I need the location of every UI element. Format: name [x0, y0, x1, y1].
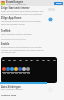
button[interactable]: Traffich — [1, 29, 44, 36]
staticText: Enable edge-to-edge rendering so that ap… — [1, 46, 44, 53]
staticText: Enable — [1, 42, 10, 45]
staticText: Zeige die Startseite wenn dieser Browser… — [1, 10, 44, 17]
button[interactable]: App — [22, 67, 26, 74]
button[interactable]: App — [10, 67, 14, 74]
button[interactable]: App — [18, 67, 22, 74]
button[interactable]: Zeige App-Home — [1, 16, 44, 25]
staticText: Mehr aktueller Verkehr anzeigen — [1, 33, 32, 36]
button[interactable]: App — [14, 67, 18, 74]
button[interactable]: App — [26, 67, 30, 74]
staticText: App-Home Bildschirm beim Start anzeigen … — [1, 20, 44, 25]
button[interactable]: Tool 2 — [13, 59, 16, 62]
staticText: Einstellungen — [6, 0, 24, 3]
button[interactable]: Tool 1 — [8, 59, 11, 62]
button[interactable]: Zeige Startseite immer — [1, 6, 44, 17]
button[interactable]: Tool 0 — [2, 59, 5, 62]
button[interactable]: Tool 8 — [47, 59, 50, 62]
button[interactable]: Tool 5 — [30, 59, 33, 62]
staticText: Sort Anzeigen Spielend — [1, 88, 23, 91]
staticText: Zeige alle Optionen an — [6, 3, 27, 6]
staticText: Zeige Startseite immer — [1, 6, 30, 9]
button[interactable]: Enable — [1, 42, 44, 53]
button[interactable]: Tool 9 — [53, 59, 56, 62]
staticText: Zeige App-Home — [1, 16, 22, 19]
button[interactable]: App — [2, 67, 6, 74]
button[interactable]: App — [6, 67, 10, 74]
button[interactable]: App icon — [1, 1, 5, 5]
button[interactable]: Tool 6 — [36, 59, 39, 62]
staticText: ERWEITERTE EINSTELLUNGEN — [1, 38, 27, 40]
staticText: Auto-Vindergan — [1, 85, 21, 88]
staticText: Aktuelle Seite — [1, 94, 17, 97]
button[interactable]: Install — [54, 2, 63, 5]
button[interactable]: Tool 3 — [19, 59, 22, 62]
button[interactable]: Tool 7 — [42, 59, 45, 62]
button[interactable]: Toggle — [48, 17, 53, 22]
staticText: Install — [56, 2, 62, 5]
staticText: Traffich — [1, 29, 11, 32]
button[interactable]: Tool 4 — [25, 59, 28, 62]
